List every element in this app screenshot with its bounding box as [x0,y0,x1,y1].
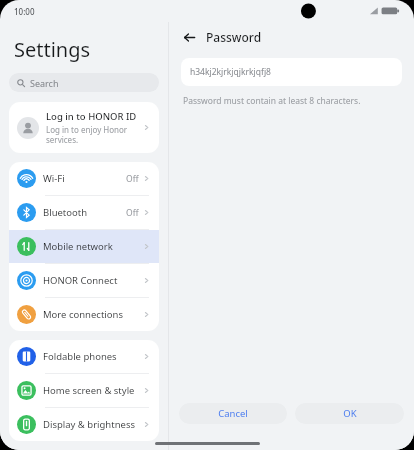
staticText: HONOR Connect [43,274,142,287]
staticText: Off [126,207,139,219]
button[interactable]: h34kj2kjrkjqjkrkjqfj8 [181,58,402,86]
staticText: Display & brightness [43,418,142,431]
staticText: Password [206,29,262,45]
button[interactable]: Back [179,27,199,47]
staticText: Search [30,77,59,89]
button[interactable]: Wi-Fi [9,162,159,195]
button[interactable]: Search [9,73,159,92]
staticText: Foldable phones [43,350,142,363]
button[interactable]: HONOR Connect [9,264,159,297]
staticText: OK [343,407,357,420]
staticText: Home screen & style [43,384,142,397]
staticText: Cancel [218,407,248,420]
button[interactable]: Foldable phones [9,340,159,373]
button[interactable]: Display & brightness [9,408,159,441]
staticText: h34kj2kjrkjqjkrkjqfj8 [190,66,271,78]
button[interactable]: Cancel [179,403,287,424]
button[interactable]: Home screen & style [9,374,159,407]
staticText: More connections [43,308,142,321]
staticText: Settings [14,36,91,63]
button[interactable]: More connections [9,298,159,331]
staticText: Off [126,173,139,185]
staticText: Mobile network [43,240,142,253]
staticText: 10:00 [14,6,35,17]
staticText: Log in to enjoy Honor services. [46,124,142,145]
button[interactable]: Bluetooth [9,196,159,229]
staticText: Wi-Fi [43,172,126,185]
button[interactable]: Mobile network [9,230,159,263]
staticText: Log in to HONOR ID [46,110,137,123]
button[interactable]: Log in to HONOR ID [9,102,159,153]
staticText: Bluetooth [43,206,126,219]
staticText: Password must contain at least 8 charact… [183,95,361,107]
button[interactable]: OK [295,403,404,424]
